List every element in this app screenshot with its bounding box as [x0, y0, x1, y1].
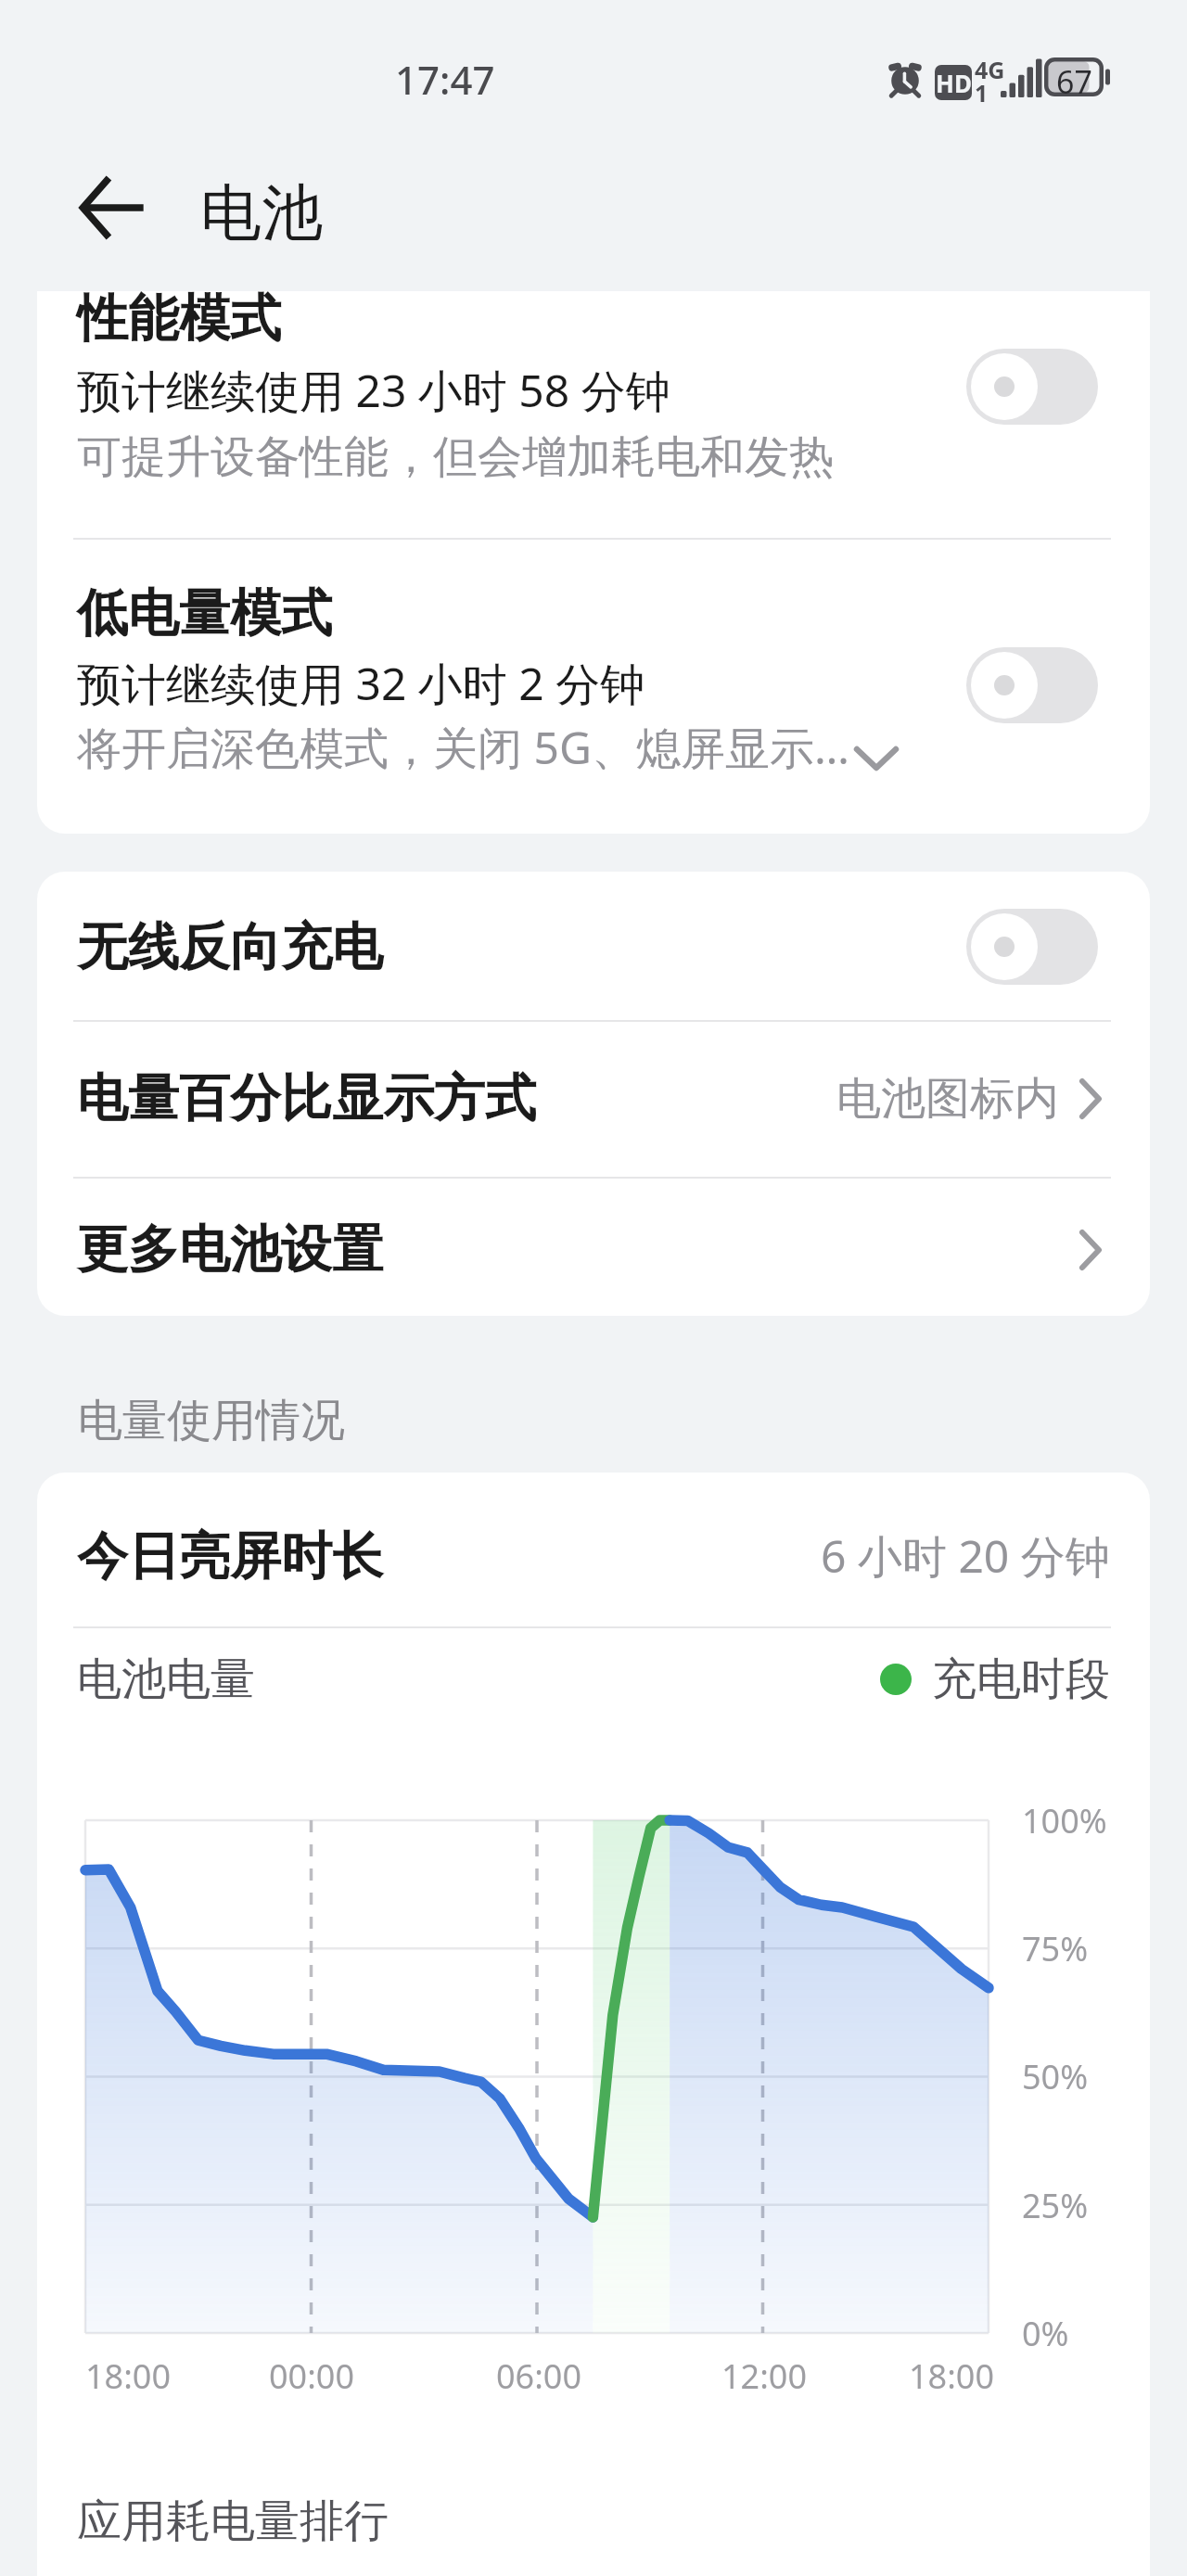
button[interactable]: 性能模式 [37, 291, 1150, 537]
button[interactable]: 今日亮屏时长 [37, 1479, 1150, 1633]
staticText: 电量使用情况 [78, 1393, 345, 1448]
staticText: 无线反向充电 [77, 915, 383, 979]
staticText: 预计继续使用 23 小时 58 分钟 [77, 360, 670, 421]
staticText: 18:00 [54, 2353, 202, 2399]
button[interactable]: 更多电池设置 [37, 1183, 1150, 1316]
staticText: 可提升设备性能，但会增加耗电和发热 [77, 429, 834, 485]
staticText: 更多电池设置 [77, 1218, 383, 1282]
staticText: 12:00 [690, 2353, 838, 2399]
staticText: 100% [1022, 1798, 1107, 1843]
staticText: 06:00 [465, 2353, 613, 2399]
staticText: 25% [1022, 2183, 1089, 2228]
button[interactable]: Back [70, 165, 156, 250]
staticText: 电量百分比显示方式 [77, 1066, 536, 1130]
button[interactable]: 电量百分比显示方式 [37, 1020, 1150, 1177]
staticText: 00:00 [237, 2353, 386, 2399]
staticText: 预计继续使用 32 小时 2 分钟 [77, 653, 645, 714]
staticText: 75% [1022, 1926, 1089, 1971]
staticText: 50% [1022, 2054, 1089, 2099]
staticText: 将开启深色模式，关闭 5G、熄屏显示… [77, 717, 849, 778]
staticText: 6 小时 20 分钟 [821, 1525, 1110, 1587]
staticText: 今日亮屏时长 [77, 1524, 383, 1588]
staticText: 1 [975, 77, 989, 108]
staticText: 电池 [200, 174, 323, 251]
staticText: 电池电量 [77, 1651, 255, 1707]
button[interactable]: Expand details [842, 734, 911, 783]
button[interactable]: Toggle [966, 647, 1098, 723]
staticText: 低电量模式 [77, 581, 332, 645]
button[interactable]: Toggle [966, 349, 1098, 425]
staticText: HD [936, 67, 972, 99]
button[interactable]: 无线反向充电 [37, 875, 1150, 1018]
staticText: 67 [1056, 60, 1092, 103]
staticText: 应用耗电量排行 [77, 2493, 389, 2549]
button[interactable]: Toggle [966, 909, 1098, 985]
button[interactable]: 低电量模式 [37, 538, 1150, 827]
staticText: 0% [1022, 2311, 1069, 2356]
staticText: 17:47 [395, 53, 495, 106]
staticText: 充电时段 [932, 1651, 1110, 1707]
staticText: 电池图标内 [836, 1071, 1059, 1127]
staticText: 4G [975, 54, 1005, 85]
staticText: 性能模式 [77, 291, 281, 351]
staticText: 18:00 [877, 2353, 1026, 2399]
